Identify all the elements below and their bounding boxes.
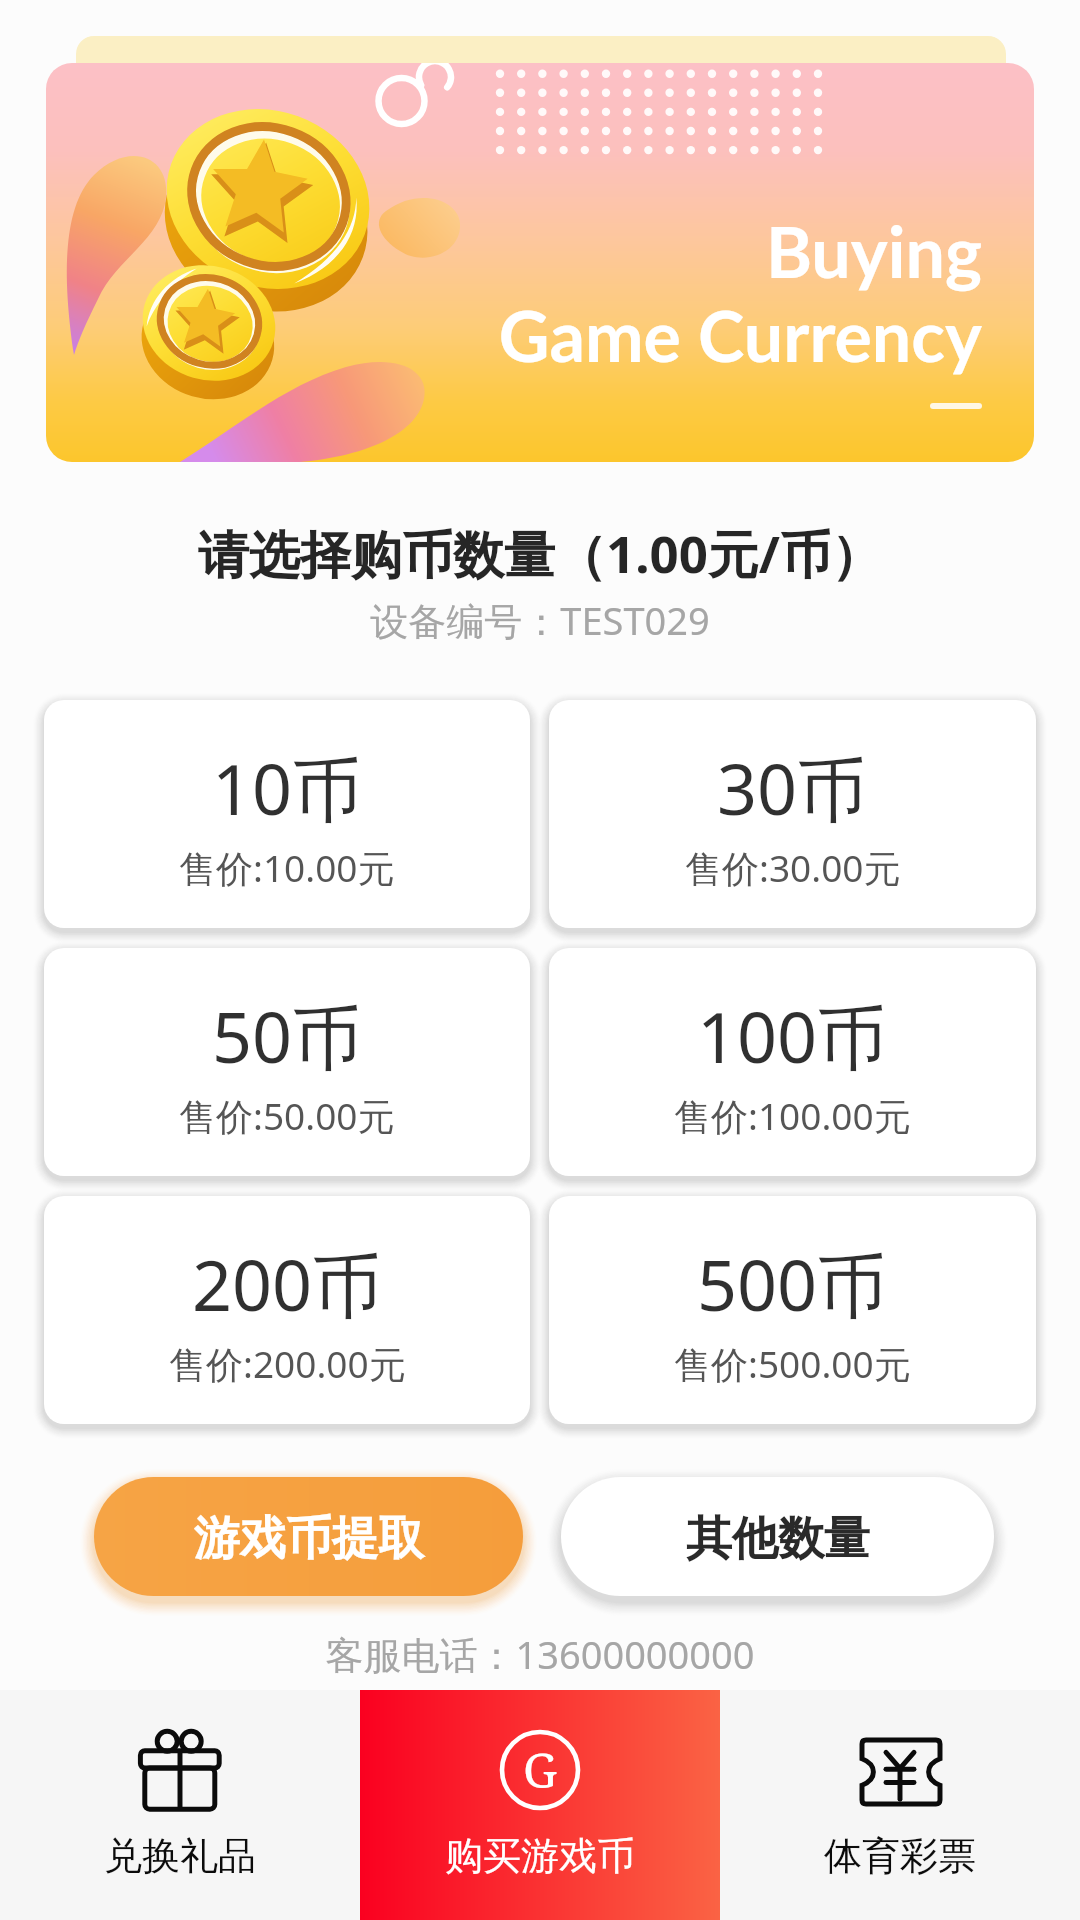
staticText: Buying (765, 209, 982, 293)
staticText: 10币 (212, 740, 363, 836)
button[interactable]: 其他数量 (561, 1477, 994, 1596)
staticText: 购买游戏币 (445, 1832, 635, 1880)
button[interactable]: 50币 (44, 948, 530, 1176)
button[interactable]: 30币 (549, 700, 1036, 928)
staticText: 游戏币提取 (194, 1510, 424, 1568)
staticText: 其他数量 (686, 1510, 870, 1568)
button[interactable]: 游戏币提取 (94, 1477, 523, 1596)
staticText: 50币 (212, 988, 363, 1084)
staticText: Game Currency (498, 293, 982, 377)
staticText: 售价:100.00元 (674, 1090, 911, 1141)
staticText: 售价:30.00元 (685, 842, 901, 893)
button[interactable]: 10币 (44, 700, 530, 928)
button[interactable]: 200币 (44, 1196, 530, 1424)
staticText: 兑换礼品 (104, 1832, 256, 1880)
staticText: 500币 (697, 1236, 888, 1332)
staticText: 30币 (717, 740, 868, 836)
button[interactable]: Redeem gifts (0, 1690, 360, 1920)
staticText: 200币 (192, 1236, 383, 1332)
staticText: G (523, 1737, 558, 1802)
staticText: 100币 (697, 988, 888, 1084)
staticText: 售价:50.00元 (179, 1090, 395, 1141)
button[interactable]: 500币 (549, 1196, 1036, 1424)
button[interactable]: Sports lottery (720, 1690, 1080, 1920)
staticText: 请选择购币数量（1.00元/币） (0, 518, 1080, 588)
staticText: 售价:500.00元 (674, 1338, 911, 1389)
button[interactable]: 100币 (549, 948, 1036, 1176)
staticText: 客服电话：13600000000 (0, 1628, 1080, 1680)
button[interactable]: Buy game currency (360, 1690, 720, 1920)
staticText: 售价:10.00元 (179, 842, 395, 893)
staticText: 体育彩票 (824, 1832, 976, 1880)
staticText: 售价:200.00元 (169, 1338, 406, 1389)
staticText: 设备编号：TEST029 (0, 594, 1080, 646)
